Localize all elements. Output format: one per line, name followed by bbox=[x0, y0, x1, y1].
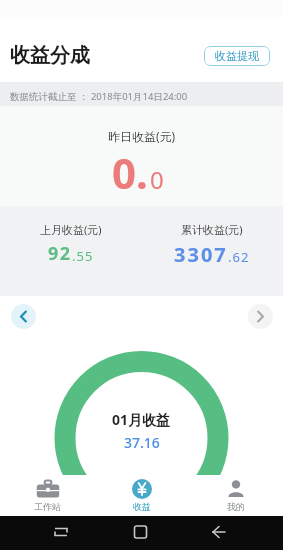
button[interactable]: 收益 bbox=[95, 475, 189, 516]
staticText: 0. bbox=[112, 144, 148, 201]
button[interactable]: 累计收益(元) bbox=[141, 206, 283, 296]
staticText: 01月收益 bbox=[112, 410, 171, 429]
staticText: 上月收益(元) bbox=[40, 222, 102, 237]
staticText: 3307 bbox=[174, 241, 228, 268]
button[interactable] bbox=[11, 304, 36, 329]
staticText: 收益分成 bbox=[10, 43, 90, 68]
staticText: 0 bbox=[150, 163, 164, 196]
staticText: 昨日收益(元) bbox=[108, 128, 176, 144]
staticText: .62 bbox=[228, 248, 250, 266]
button[interactable]: 我的 bbox=[189, 475, 283, 516]
staticText: 92 bbox=[48, 241, 72, 266]
staticText: 工作站 bbox=[34, 501, 61, 512]
button[interactable]: 收益提现 bbox=[204, 46, 270, 66]
button[interactable]: 上月收益(元) bbox=[0, 206, 141, 296]
staticText: 收益提现 bbox=[215, 49, 259, 63]
staticText: 数据统计截止至 ： 2018年01月14日24:00 bbox=[10, 90, 188, 103]
staticText: 收益 bbox=[133, 501, 151, 512]
button[interactable] bbox=[248, 304, 273, 329]
staticText: .55 bbox=[72, 247, 94, 265]
button[interactable]: 工作站 bbox=[0, 475, 95, 516]
staticText: 37.16 bbox=[124, 433, 160, 452]
staticText: 累计收益(元) bbox=[181, 222, 243, 237]
staticText: 我的 bbox=[227, 501, 245, 512]
